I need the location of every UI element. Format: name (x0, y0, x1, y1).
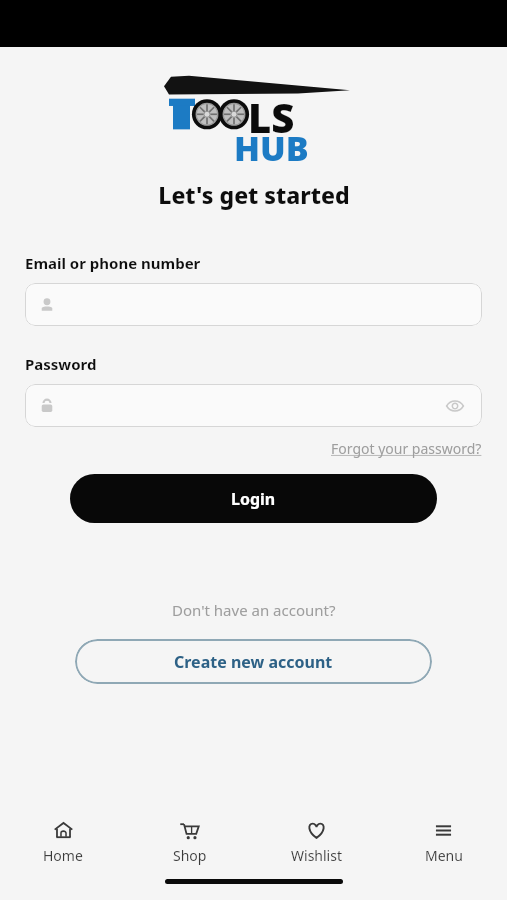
staticText: Home (43, 846, 83, 865)
staticText: Wishlist (291, 846, 342, 865)
button[interactable]: Show password (25, 384, 482, 427)
staticText: Email or phone number (25, 253, 201, 273)
button[interactable] (25, 283, 482, 326)
button[interactable]: Menu (380, 811, 507, 873)
staticText: HUB (234, 125, 309, 171)
button[interactable]: Forgot your password? (331, 439, 482, 458)
button[interactable]: Wishlist (253, 811, 380, 873)
button[interactable]: Shop (126, 811, 253, 873)
staticText: Don't have an account? (172, 600, 336, 620)
button[interactable]: Home (0, 811, 126, 873)
staticText: Shop (173, 846, 207, 865)
button[interactable]: Login (70, 474, 437, 523)
button[interactable]: Create new account (75, 639, 432, 684)
staticText: Password (25, 354, 97, 374)
staticText: Menu (425, 846, 463, 865)
staticText: Create new account (174, 651, 333, 673)
staticText: Let's get started (158, 179, 350, 210)
staticText: LS (248, 90, 295, 144)
button[interactable]: Show password (442, 393, 468, 419)
staticText: Forgot your password? (331, 439, 482, 458)
staticText: Login (231, 488, 276, 510)
